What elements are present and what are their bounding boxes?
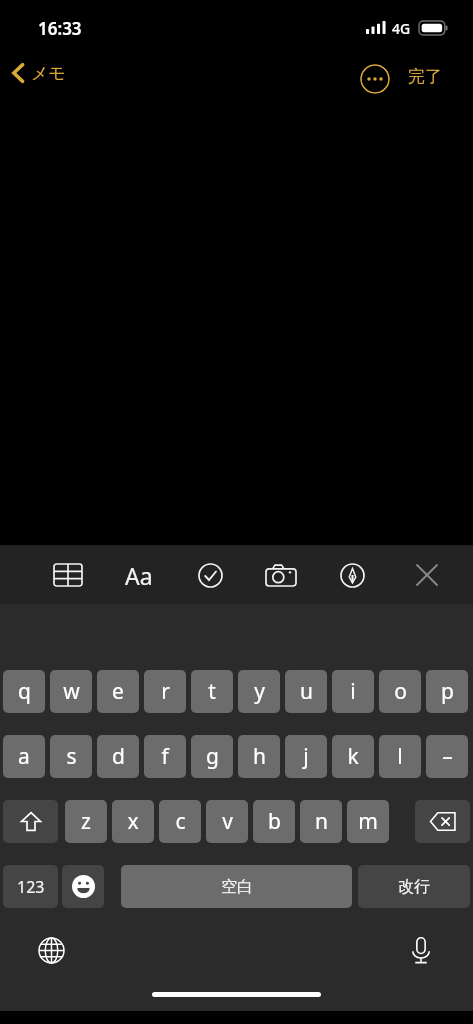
staticText: n xyxy=(315,807,328,836)
button[interactable]: c xyxy=(159,800,201,843)
button[interactable]: Backspace xyxy=(415,800,470,843)
button[interactable]: n xyxy=(300,800,342,843)
button[interactable]: Dictation xyxy=(400,929,442,971)
staticText: l xyxy=(397,742,403,771)
staticText: t xyxy=(208,677,216,706)
staticText: 改行 xyxy=(398,877,430,897)
button[interactable]: Numbers xyxy=(3,865,58,908)
staticText: g xyxy=(206,742,219,771)
button[interactable]: q xyxy=(3,670,45,713)
button[interactable]: Toolbar action xyxy=(407,555,447,595)
staticText: 16:33 xyxy=(38,17,82,40)
button[interactable]: 完了 xyxy=(404,62,446,91)
staticText: v xyxy=(222,807,233,836)
button[interactable]: l xyxy=(379,735,421,778)
button[interactable]: h xyxy=(238,735,280,778)
button[interactable]: y xyxy=(238,670,280,713)
button[interactable]: Emoji xyxy=(62,865,104,908)
button[interactable]: m xyxy=(347,800,389,843)
button[interactable]: Switch keyboard language xyxy=(30,929,72,971)
button[interactable]: Shift xyxy=(3,800,58,843)
staticText: 完了 xyxy=(408,66,442,87)
staticText: b xyxy=(268,807,281,836)
staticText: x xyxy=(127,807,139,836)
staticText: q xyxy=(18,677,31,706)
button[interactable]: d xyxy=(97,735,139,778)
button[interactable]: 空白 xyxy=(121,865,352,908)
staticText: 4G xyxy=(392,19,411,38)
staticText: s xyxy=(66,742,77,771)
staticText: – xyxy=(442,742,453,771)
button[interactable]: g xyxy=(191,735,233,778)
button[interactable]: p xyxy=(426,670,468,713)
staticText: j xyxy=(303,742,309,771)
button[interactable]: メモ xyxy=(8,58,70,88)
staticText: i xyxy=(350,677,356,706)
staticText: m xyxy=(358,807,378,836)
button[interactable]: a xyxy=(3,735,45,778)
staticText: z xyxy=(81,807,91,836)
staticText: w xyxy=(63,677,80,706)
staticText: y xyxy=(254,677,265,706)
button[interactable]: i xyxy=(332,670,374,713)
staticText: 空白 xyxy=(221,877,253,897)
button[interactable]: o xyxy=(379,670,421,713)
button[interactable]: s xyxy=(50,735,92,778)
button[interactable]: v xyxy=(206,800,248,843)
staticText: Aa xyxy=(125,560,153,591)
staticText: o xyxy=(394,677,407,706)
staticText: k xyxy=(347,742,359,771)
staticText: u xyxy=(300,677,313,706)
staticText: e xyxy=(112,677,124,706)
button[interactable]: Toolbar action xyxy=(48,555,88,595)
button[interactable]: More options xyxy=(360,64,390,94)
button[interactable]: z xyxy=(65,800,107,843)
button[interactable]: f xyxy=(144,735,186,778)
button[interactable]: r xyxy=(144,670,186,713)
button[interactable]: 改行 xyxy=(358,865,470,908)
button[interactable]: Toolbar action xyxy=(261,555,301,595)
staticText: c xyxy=(175,807,186,836)
staticText: d xyxy=(112,742,125,771)
staticText: 123 xyxy=(17,876,45,898)
button[interactable]: k xyxy=(332,735,374,778)
button[interactable]: – xyxy=(426,735,468,778)
button[interactable]: x xyxy=(112,800,154,843)
staticText: メモ xyxy=(31,63,66,84)
button[interactable]: Toolbar action xyxy=(119,555,159,595)
button[interactable]: j xyxy=(285,735,327,778)
button[interactable]: t xyxy=(191,670,233,713)
staticText: h xyxy=(253,742,266,771)
button[interactable]: Toolbar action xyxy=(332,555,372,595)
staticText: r xyxy=(161,677,170,706)
staticText: p xyxy=(441,677,454,706)
button[interactable]: b xyxy=(253,800,295,843)
staticText: f xyxy=(161,742,169,771)
button[interactable]: w xyxy=(50,670,92,713)
button[interactable]: Toolbar action xyxy=(190,555,230,595)
button[interactable]: u xyxy=(285,670,327,713)
button[interactable]: e xyxy=(97,670,139,713)
staticText: a xyxy=(18,742,30,771)
